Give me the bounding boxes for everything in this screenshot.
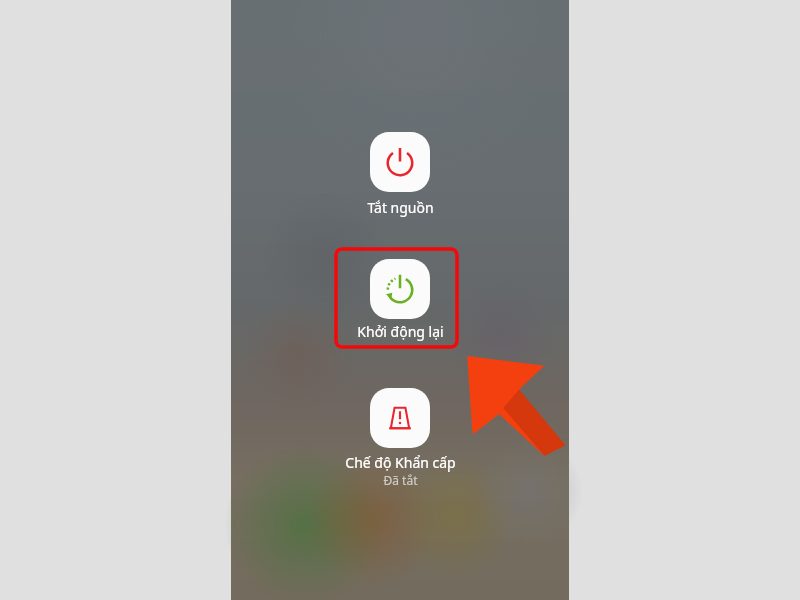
staticText: Tắt nguồn <box>367 198 434 217</box>
staticText: Đã tắt <box>383 472 418 488</box>
staticText: Khởi động lại <box>357 322 444 341</box>
staticText: Chế độ Khẩn cấp <box>345 453 456 472</box>
button[interactable]: Tắt nguồn <box>370 132 430 192</box>
button[interactable]: Chế độ Khẩn cấp <box>370 388 430 448</box>
button[interactable]: Khởi động lại <box>370 259 430 319</box>
